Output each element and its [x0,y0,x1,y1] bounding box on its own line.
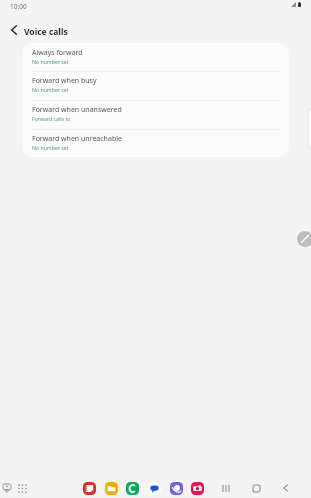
staticText: No number set [32,144,69,151]
button[interactable]: Notes [83,482,96,495]
button[interactable]: My Files [105,482,118,495]
button[interactable]: Back [278,481,292,495]
button[interactable]: Camera [191,482,204,495]
button[interactable]: Edit [297,231,311,247]
button[interactable]: Apps [15,481,29,495]
button[interactable]: Forward when unreachable [22,129,289,157]
button[interactable]: Forward when busy [22,71,289,100]
button[interactable]: Messages [148,482,161,495]
button[interactable]: Phone [126,482,139,495]
staticText: Forward when unanswered [32,105,122,115]
staticText: Always forward [32,48,83,58]
staticText: Forward when busy [32,76,97,86]
staticText: Voice calls [24,26,68,38]
button[interactable]: DeX mode [0,481,14,495]
staticText: No number set [32,58,69,65]
button[interactable]: Home [249,481,263,495]
staticText: 10:00 [10,2,27,11]
button[interactable]: Always forward [22,43,289,71]
staticText: Forward calls to [32,115,71,122]
button[interactable]: Navigate up [0,18,24,42]
button[interactable]: Recent apps [219,481,233,495]
staticText: No number set [32,86,69,93]
button[interactable]: Forward when unanswered [22,100,289,129]
button[interactable]: Internet [170,482,183,495]
staticText: Forward when unreachable [32,134,122,144]
